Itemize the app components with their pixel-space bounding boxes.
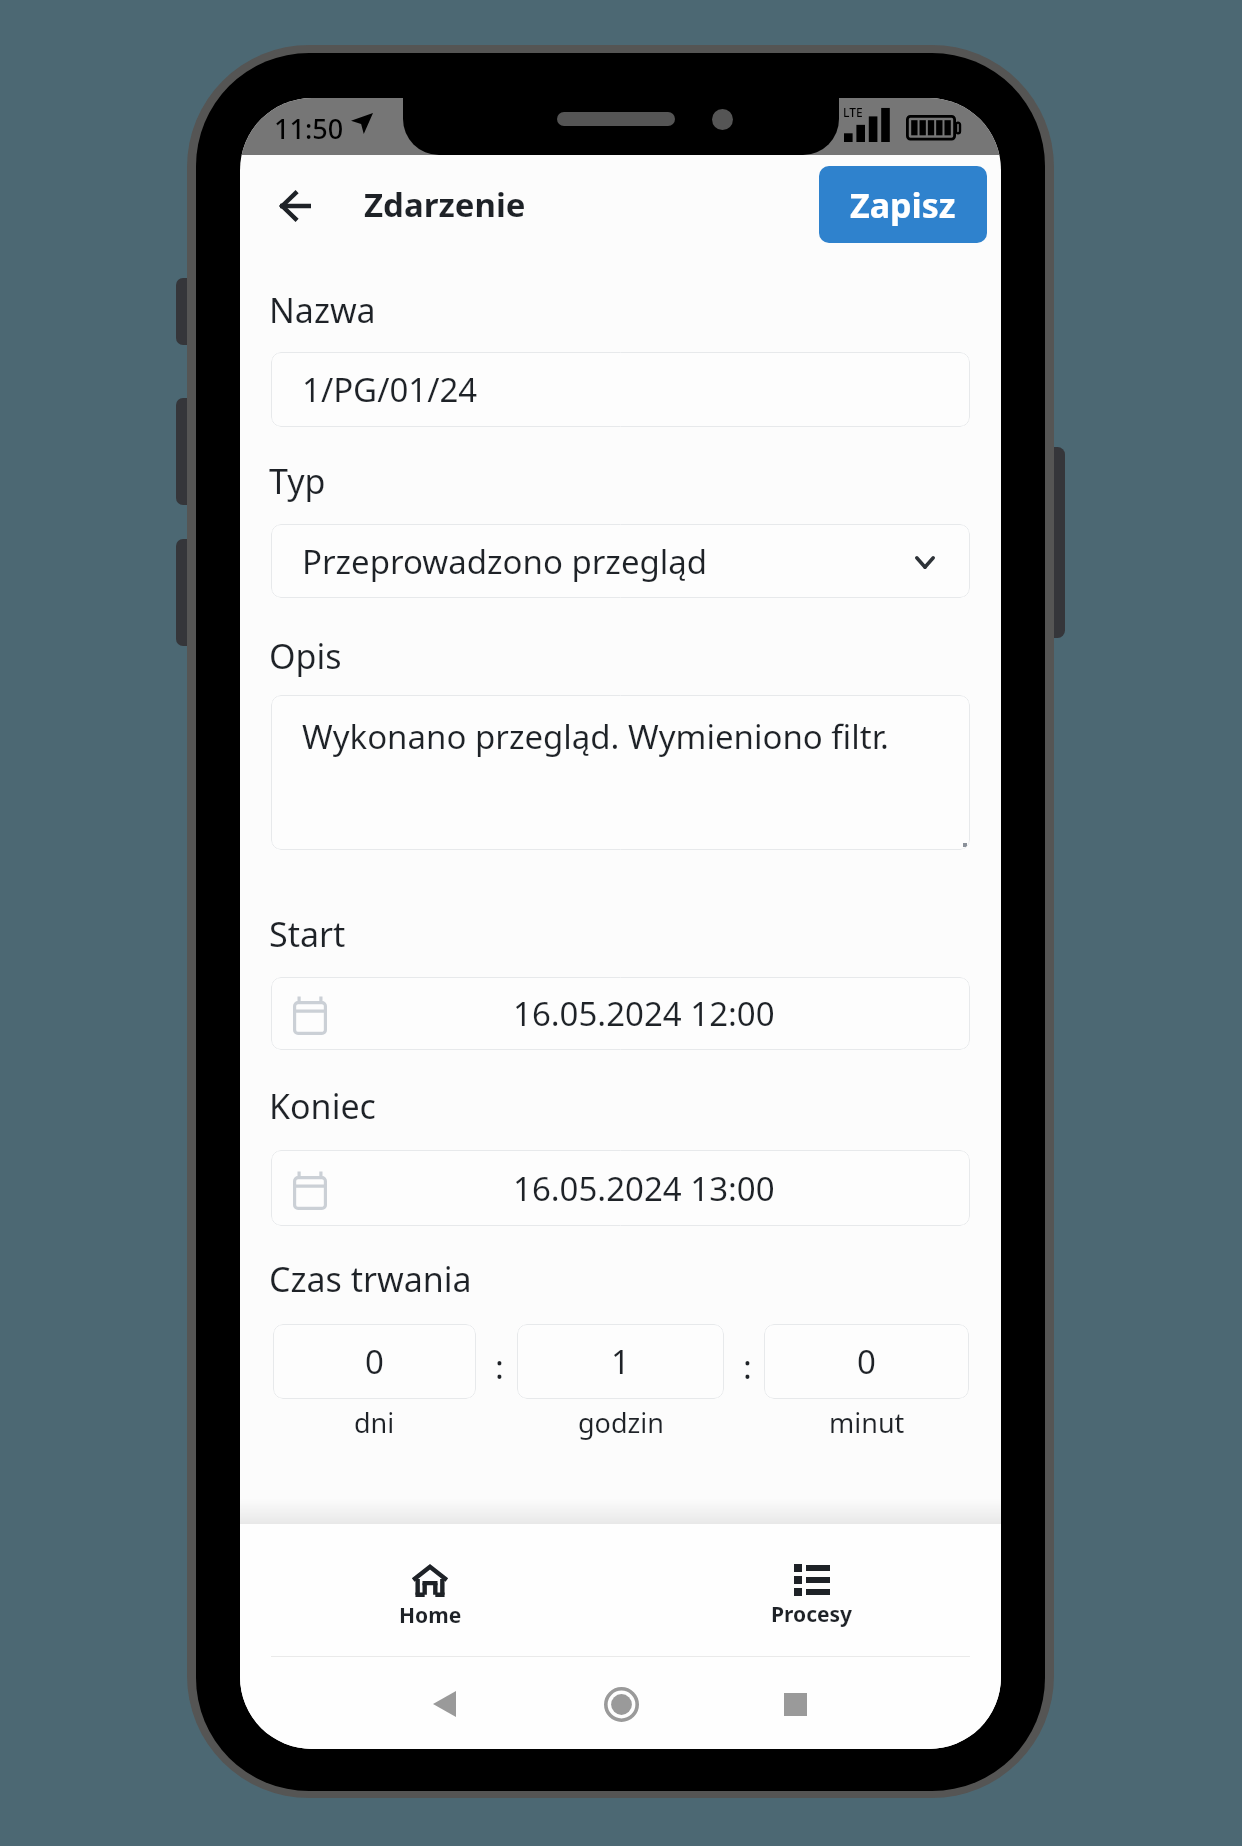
- staticText: 0: [857, 1339, 876, 1384]
- button[interactable]: Zapisz: [819, 166, 987, 243]
- staticText: Procesy: [771, 1600, 853, 1629]
- staticText: dni: [354, 1404, 395, 1441]
- button[interactable]: Back: [410, 1670, 478, 1738]
- staticText: Przeprowadzono przegląd: [302, 539, 708, 584]
- staticText: 16.05.2024 13:00: [513, 1166, 775, 1211]
- staticText: :: [743, 1344, 752, 1389]
- staticText: 16.05.2024 12:00: [513, 991, 775, 1036]
- staticText: godzin: [578, 1404, 664, 1441]
- staticText: :: [495, 1344, 504, 1389]
- staticText: Home: [399, 1601, 462, 1630]
- staticText: 1/PG/01/24: [302, 367, 478, 412]
- staticText: 11:50: [274, 110, 344, 147]
- button[interactable]: Home: [320, 1564, 540, 1630]
- button[interactable]: Back: [259, 170, 331, 242]
- staticText: Czas trwania: [269, 1256, 472, 1302]
- button[interactable]: Wykonano przegląd. Wymieniono filtr.: [271, 695, 970, 850]
- staticText: Typ: [269, 458, 326, 504]
- button[interactable]: 0: [273, 1324, 476, 1399]
- button[interactable]: 16.05.2024 13:00: [271, 1150, 970, 1226]
- button[interactable]: Recents: [761, 1670, 829, 1738]
- staticText: Wykonano przegląd. Wymieniono filtr.: [302, 714, 889, 759]
- button[interactable]: 1/PG/01/24: [271, 352, 970, 427]
- staticText: Nazwa: [269, 287, 376, 333]
- staticText: 0: [365, 1339, 384, 1384]
- staticText: Opis: [269, 633, 342, 679]
- staticText: minut: [829, 1404, 905, 1441]
- staticText: Zdarzenie: [364, 182, 526, 227]
- staticText: LTE: [843, 104, 863, 120]
- staticText: Zapisz: [850, 182, 956, 228]
- staticText: Koniec: [269, 1083, 376, 1129]
- button[interactable]: 16.05.2024 12:00: [271, 977, 970, 1050]
- button[interactable]: Przeprowadzono przegląd: [271, 524, 970, 598]
- button[interactable]: Home: [587, 1670, 655, 1738]
- staticText: Start: [269, 911, 346, 957]
- staticText: 1: [611, 1339, 630, 1384]
- button[interactable]: 1: [517, 1324, 724, 1399]
- button[interactable]: Procesy: [702, 1564, 922, 1629]
- button[interactable]: 0: [764, 1324, 969, 1399]
